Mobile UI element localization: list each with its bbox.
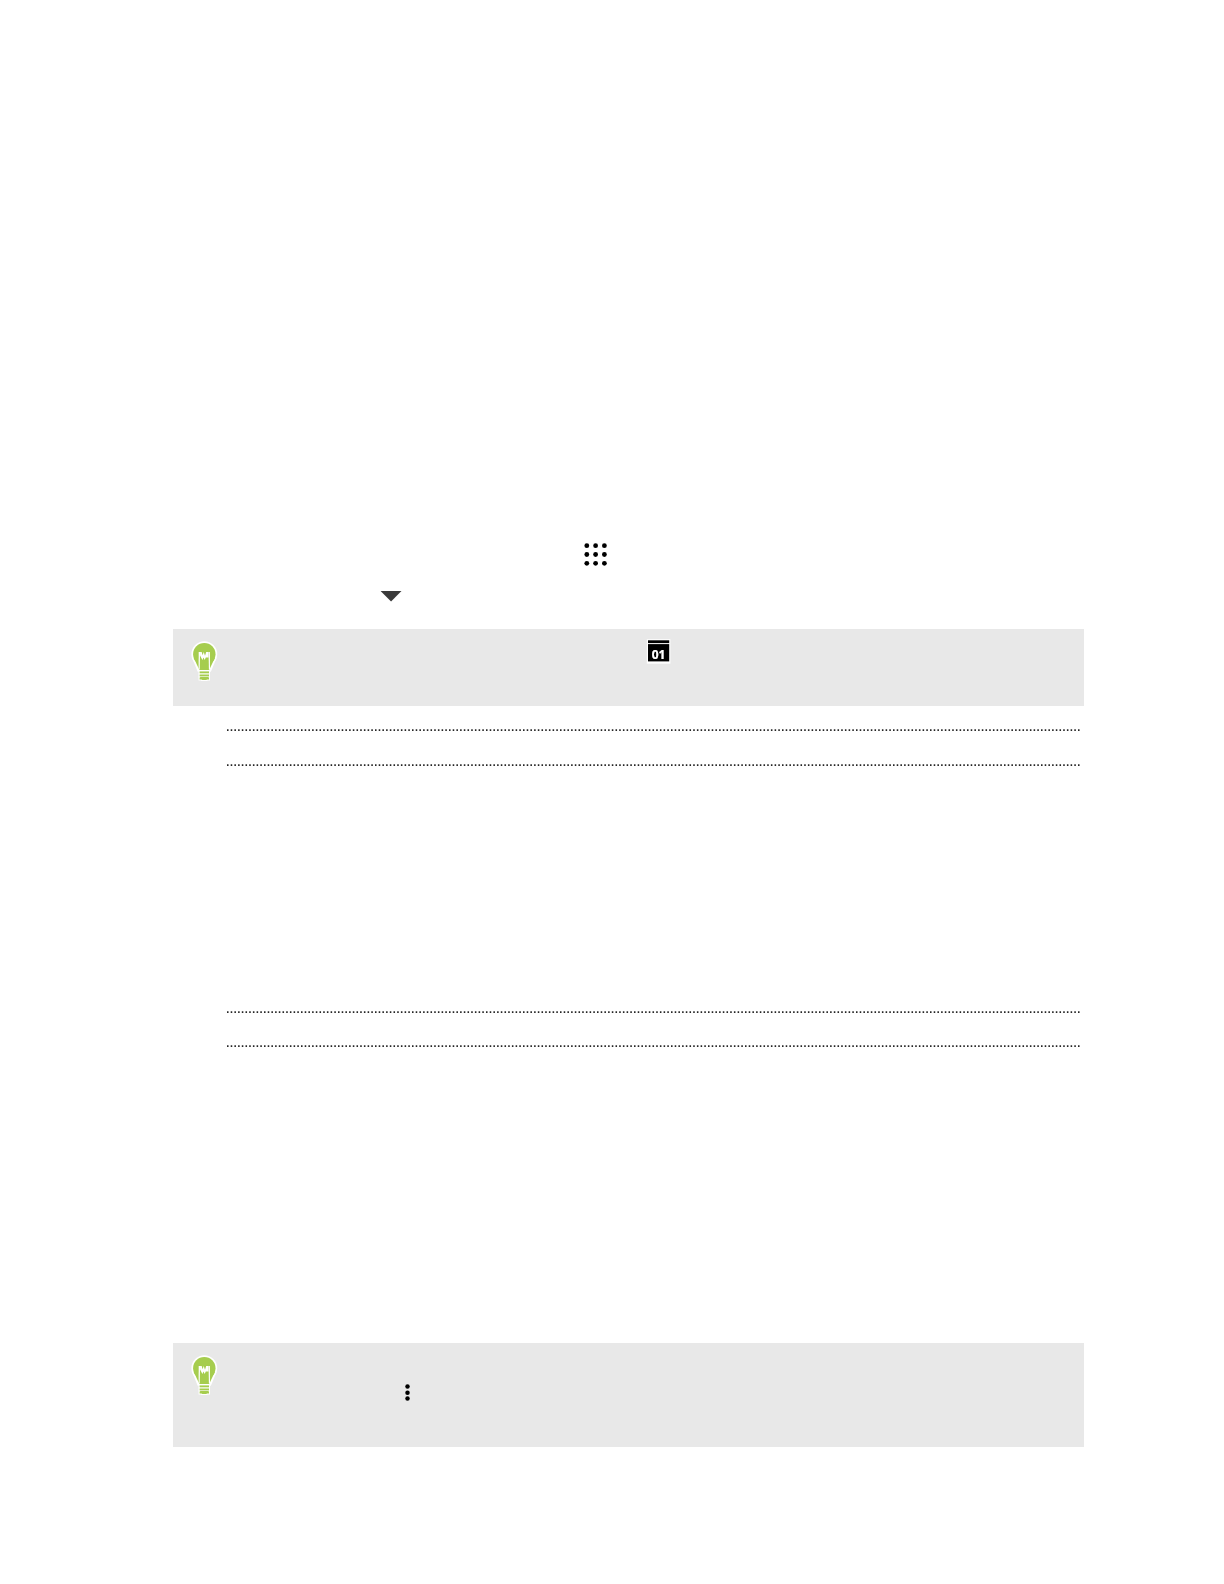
button[interactable]: Tip <box>173 629 1084 706</box>
button[interactable]: Tip <box>173 1343 1084 1447</box>
staticText: 01 <box>648 646 669 662</box>
button[interactable]: Calendar <box>648 640 669 663</box>
other: Tip <box>189 1355 219 1399</box>
button[interactable]: More options <box>400 1381 415 1403</box>
other: Tip <box>189 641 219 685</box>
button[interactable]: All apps <box>582 541 610 569</box>
button[interactable]: Expand <box>380 590 402 602</box>
